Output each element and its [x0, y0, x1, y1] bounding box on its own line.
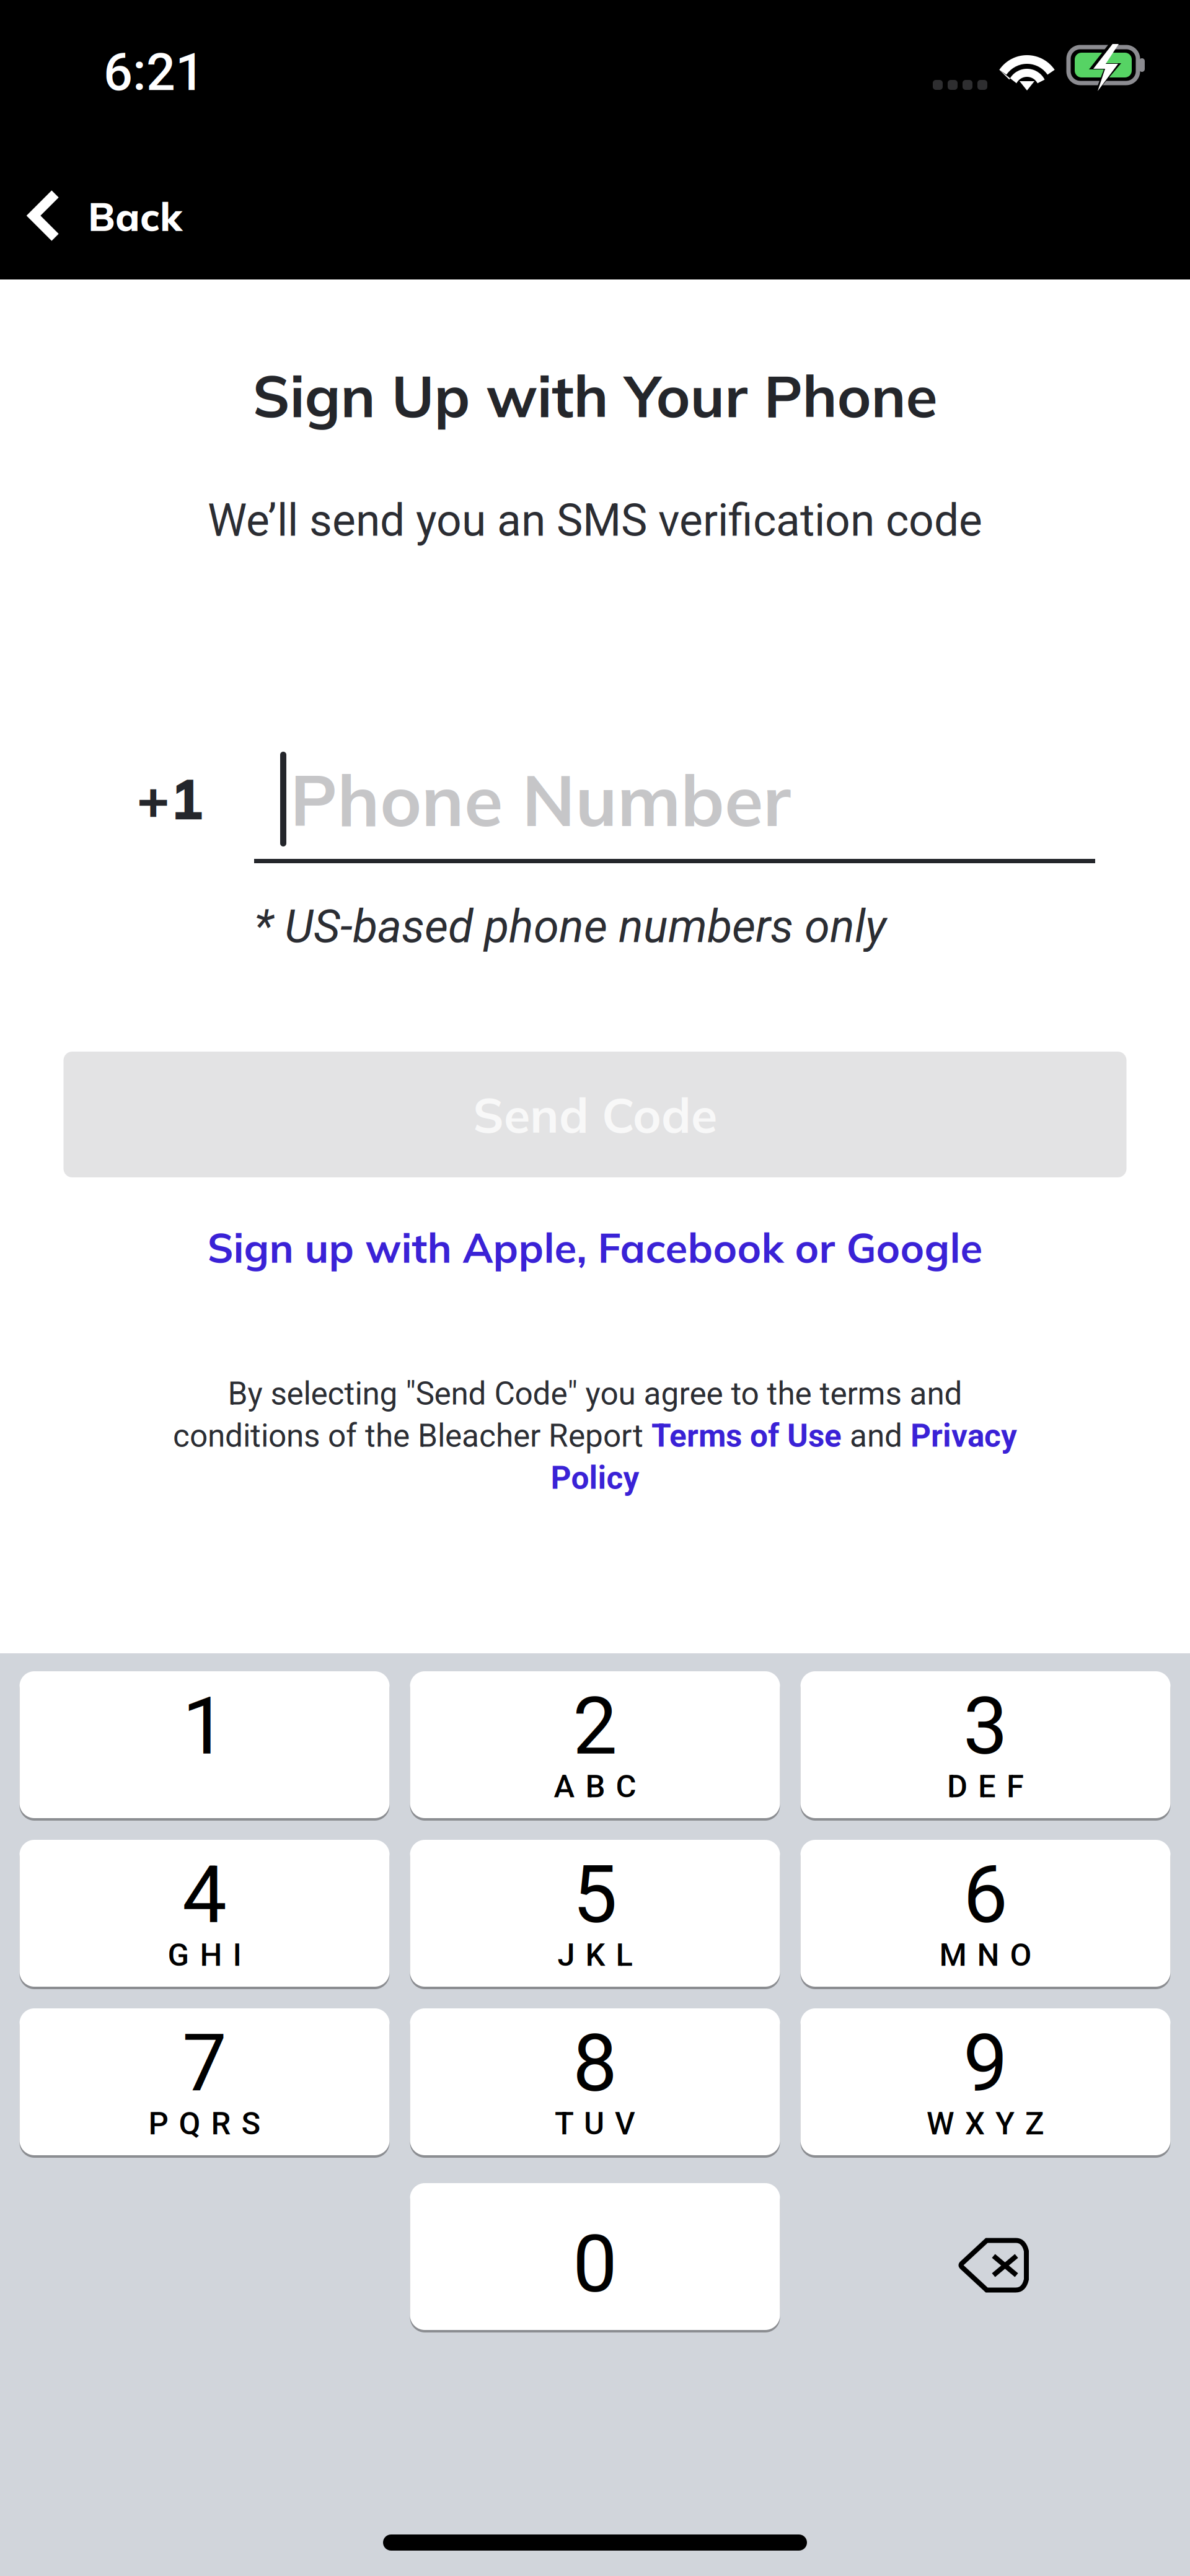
staticText: Terms of Use	[651, 1417, 842, 1454]
staticText: 8	[573, 2017, 617, 2110]
button[interactable]: 0	[410, 2183, 780, 2330]
staticText: Policy	[551, 1459, 639, 1497]
staticText: +1	[136, 763, 203, 833]
staticText: G H I	[168, 1937, 241, 1973]
staticText: T U V	[555, 2105, 635, 2142]
button[interactable]: 7	[20, 2008, 390, 2155]
staticText: Phone Number	[290, 755, 791, 844]
button[interactable]: 1	[20, 1671, 390, 1818]
staticText: 4	[182, 1848, 227, 1941]
staticText: 7	[182, 2017, 227, 2110]
button[interactable]: Sign up with Apple, Facebook or Google	[99, 1223, 1091, 1272]
button[interactable]: 4	[20, 1840, 390, 1987]
staticText: J K L	[558, 1937, 632, 1973]
staticText: 0	[573, 2218, 617, 2311]
staticText: * US-based phone numbers only	[254, 900, 886, 953]
staticText: Sign Up with Your Phone	[253, 359, 937, 432]
staticText: W X Y Z	[927, 2105, 1044, 2142]
staticText: Send Code	[473, 1084, 717, 1145]
button[interactable]: Back	[0, 159, 384, 276]
staticText: Privacy	[910, 1417, 1017, 1454]
button[interactable]: Privacy	[910, 1417, 1017, 1454]
staticText: and	[842, 1417, 910, 1454]
button[interactable]: 5	[410, 1840, 780, 1987]
button[interactable]: 6	[800, 1840, 1170, 1987]
button[interactable]: 2	[410, 1671, 780, 1818]
staticText: By selecting "Send Code" you agree to th…	[228, 1375, 962, 1412]
staticText: D E F	[947, 1768, 1024, 1805]
button[interactable]: Send Code	[64, 1052, 1126, 1177]
staticText: 3	[963, 1680, 1008, 1773]
staticText: 5	[573, 1848, 617, 1941]
staticText: 9	[963, 2017, 1008, 2110]
button[interactable]: 3	[800, 1671, 1170, 1818]
staticText: conditions of the Bleacher Report	[173, 1417, 651, 1454]
button[interactable]: Terms of Use	[651, 1417, 842, 1454]
staticText: 6	[963, 1848, 1008, 1941]
staticText: 1	[182, 1680, 227, 1773]
button[interactable]: 9	[800, 2008, 1170, 2155]
staticText: 2	[573, 1680, 617, 1773]
button[interactable]: Policy	[551, 1462, 639, 1494]
staticText: Back	[88, 192, 182, 241]
staticText: 6:21	[104, 43, 205, 103]
staticText: P Q R S	[148, 2105, 261, 2142]
staticText: Sign up with Apple, Facebook or Google	[207, 1222, 983, 1273]
staticText: We’ll send you an SMS verification code	[208, 495, 982, 546]
staticText: M N O	[939, 1937, 1032, 1973]
staticText: A B C	[554, 1768, 636, 1805]
button[interactable]: 8	[410, 2008, 780, 2155]
button[interactable]: Delete	[800, 2183, 1170, 2330]
